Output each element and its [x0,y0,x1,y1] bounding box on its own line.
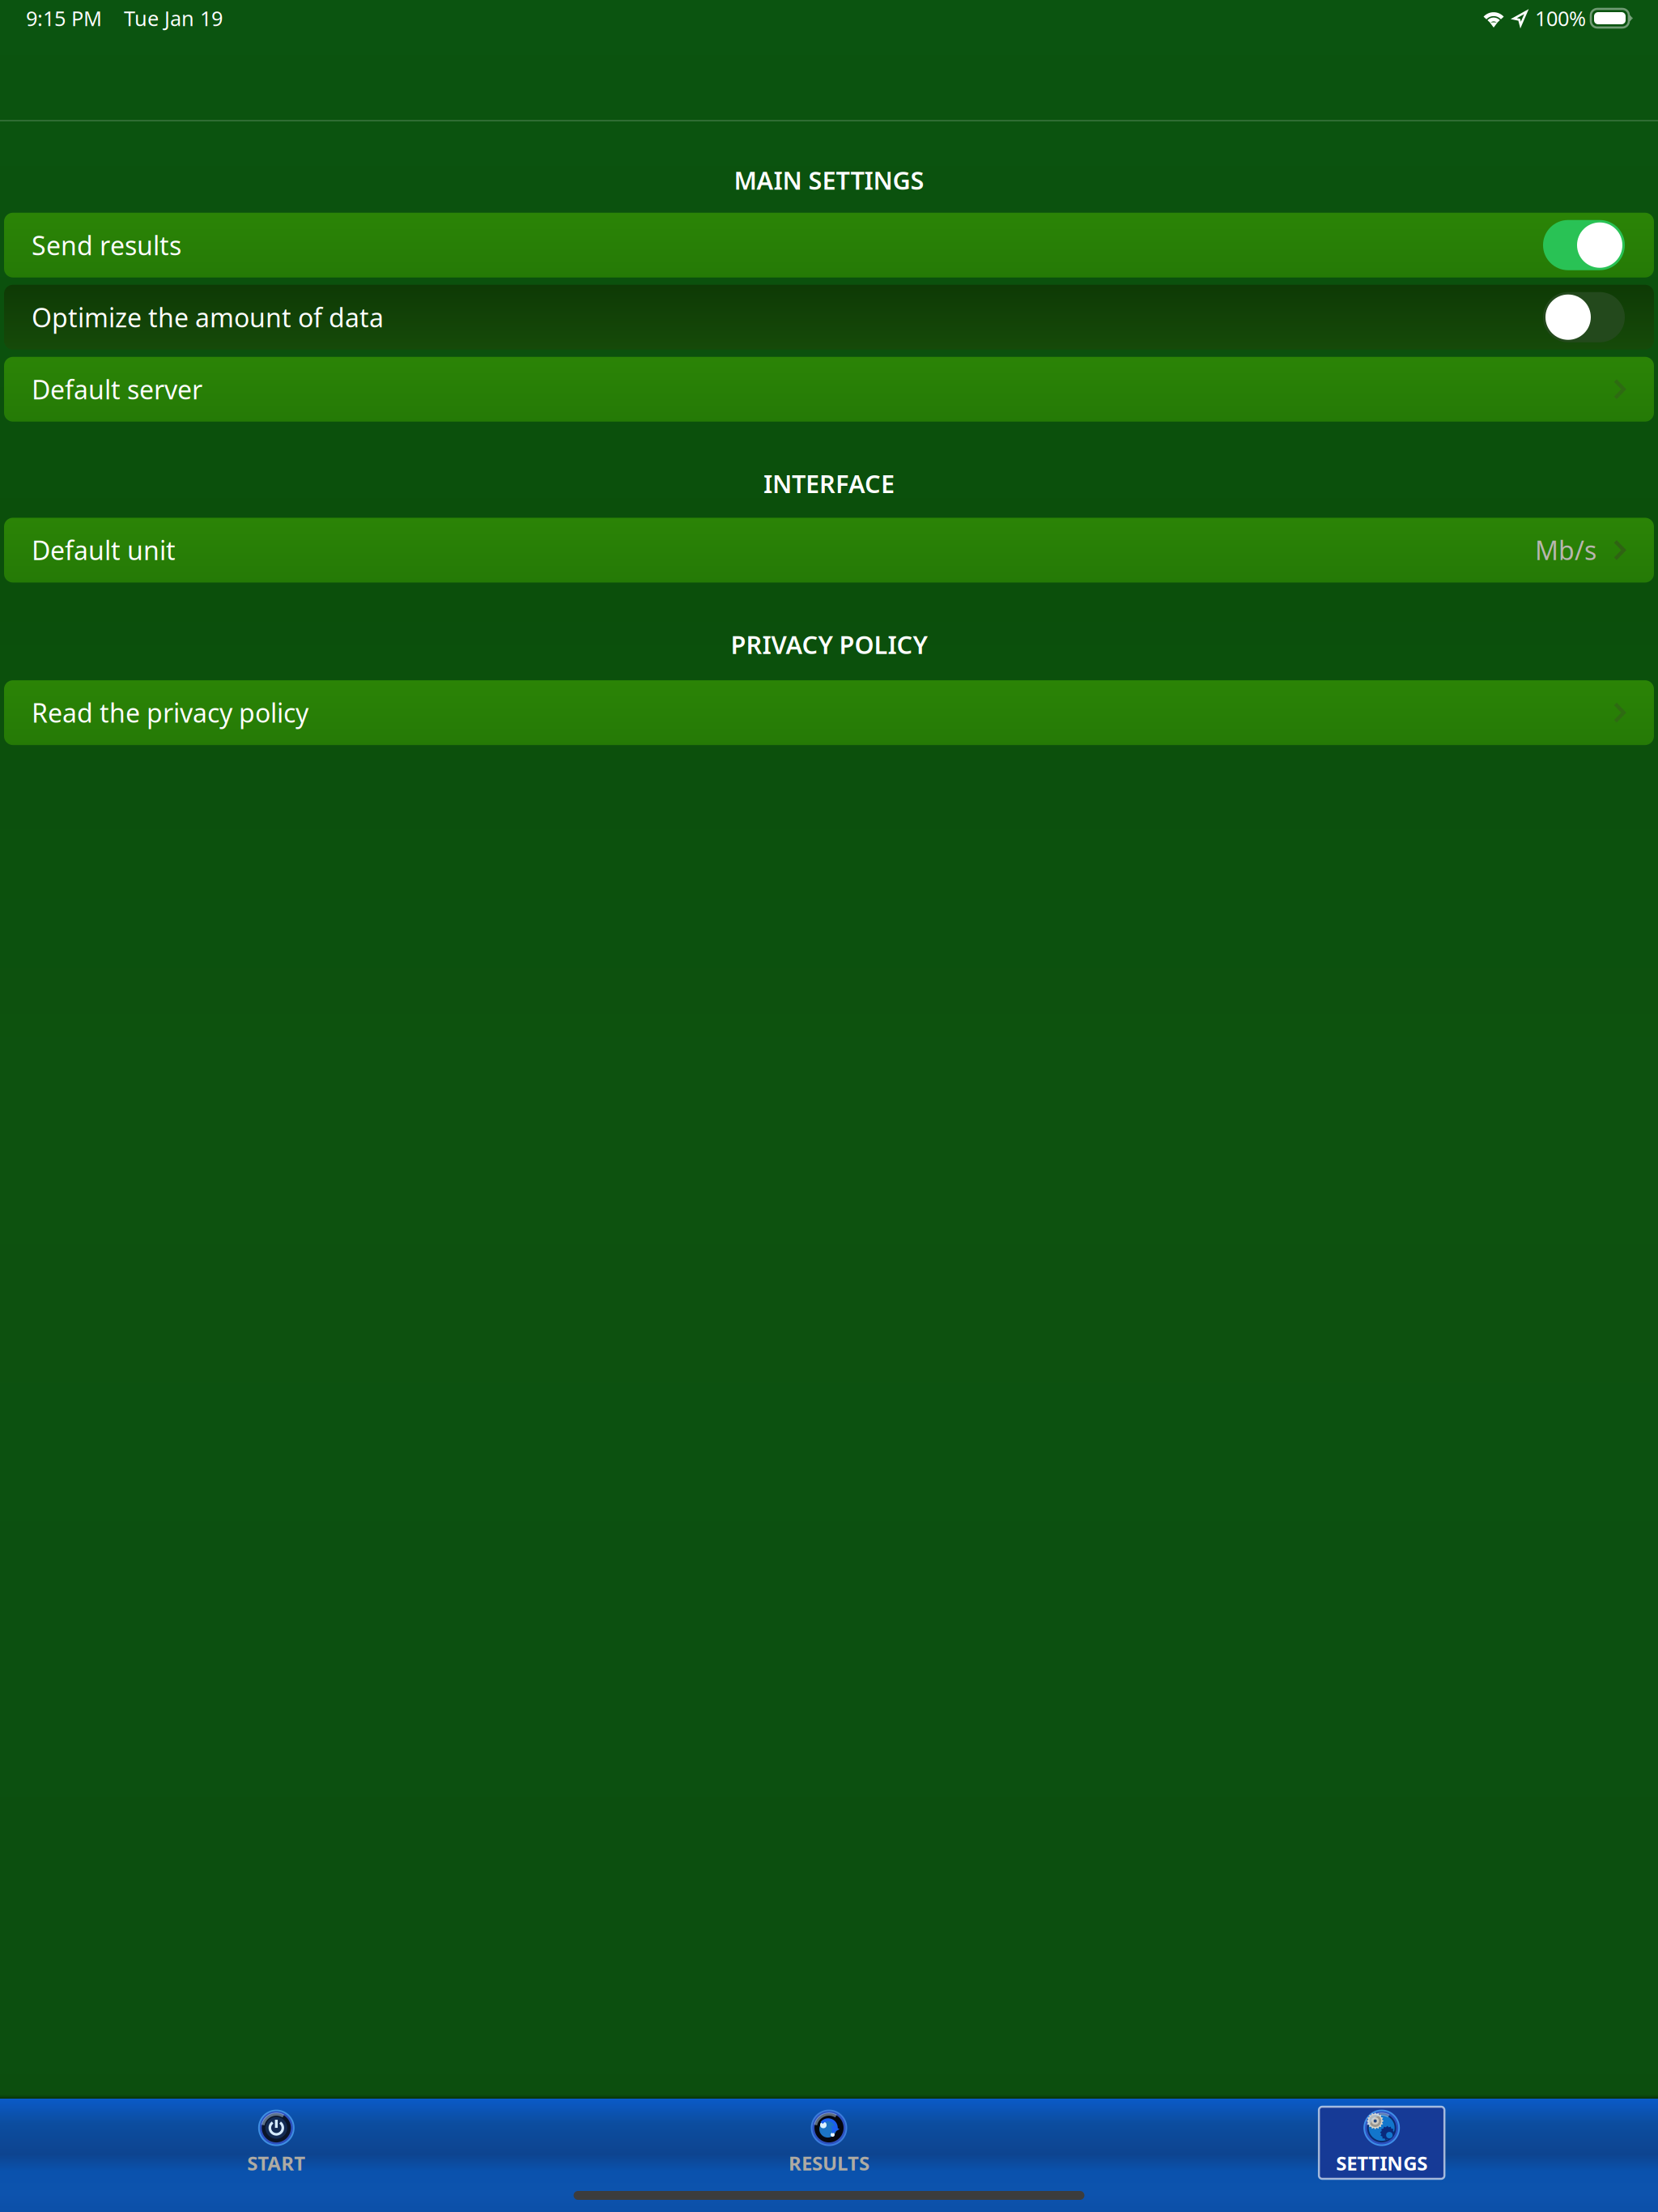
staticText: PRIVACY POLICY [731,628,927,661]
staticText: INTERFACE [763,467,895,500]
staticText: Optimize the amount of data [32,300,384,334]
staticText: 9:15 PM [26,5,102,32]
staticText: Read the privacy policy [32,695,308,730]
button[interactable]: Optimize the amount of data [1542,292,1626,343]
staticText: Tue Jan 19 [124,5,223,32]
staticText: Default server [32,372,202,406]
staticText: Mb/s [1535,533,1596,567]
button[interactable]: RESULTS [553,2107,1105,2179]
button[interactable]: Read the privacy policy [4,680,1654,745]
staticText: MAIN SETTINGS [734,164,924,197]
button[interactable]: Send results [1542,220,1626,271]
staticText: START [247,2150,305,2176]
staticText: Send results [32,228,181,262]
button[interactable]: Default unit [4,518,1654,582]
button[interactable]: Default server [4,357,1654,422]
staticText: RESULTS [789,2150,869,2176]
button[interactable]: SETTINGS [1105,2107,1658,2179]
staticText: Default unit [32,533,176,567]
staticText: SETTINGS [1336,2150,1427,2176]
staticText: 100% [1535,5,1586,32]
button[interactable]: START [0,2107,553,2179]
button[interactable]: Optimize the amount of data [4,285,1654,350]
button[interactable]: Send results [4,213,1654,277]
